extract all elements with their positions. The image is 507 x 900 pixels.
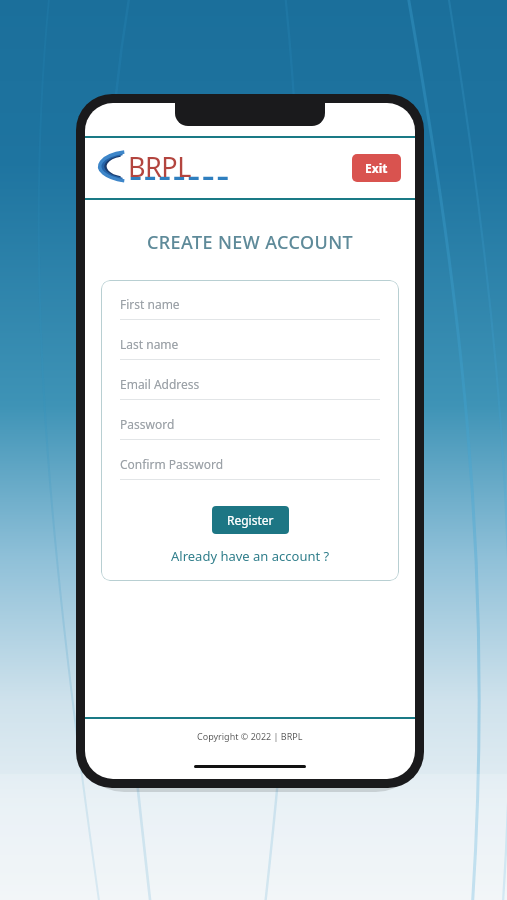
staticText: BRPL xyxy=(128,148,191,185)
other: BRPL logo xyxy=(99,148,231,188)
button[interactable]: Register xyxy=(212,506,289,534)
staticText: Email Address xyxy=(120,376,200,392)
staticText: Exit xyxy=(365,160,388,176)
button[interactable]: Last name xyxy=(120,336,380,376)
staticText: Password xyxy=(120,416,175,432)
staticText: Already have an account ? xyxy=(171,547,330,565)
button[interactable]: Email Address xyxy=(120,376,380,416)
button[interactable]: Confirm Password xyxy=(120,456,380,496)
button[interactable]: Exit xyxy=(352,154,401,182)
staticText: Register xyxy=(227,512,274,528)
staticText: First name xyxy=(120,296,180,312)
staticText: Copyright © 2022 | BRPL xyxy=(197,730,303,742)
staticText: Last name xyxy=(120,336,179,352)
staticText: Confirm Password xyxy=(120,456,224,472)
button[interactable]: Already have an account ? xyxy=(120,547,380,565)
button[interactable]: First name xyxy=(120,296,380,336)
button[interactable]: Password xyxy=(120,416,380,456)
staticText: CREATE NEW ACCOUNT xyxy=(85,230,415,255)
